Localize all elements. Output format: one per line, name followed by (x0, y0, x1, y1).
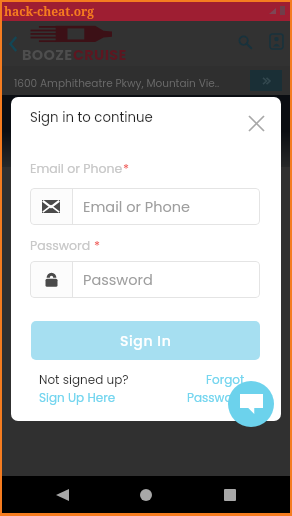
staticText: BOOZE (22, 45, 73, 65)
button[interactable]: Back (0, 21, 26, 66)
button[interactable]: Recents (208, 476, 252, 513)
staticText: Sign Up Here (39, 389, 116, 406)
staticText: Forgot (206, 371, 245, 388)
button[interactable]: Search (230, 19, 260, 64)
staticText: Password (30, 237, 94, 254)
staticText: CRUISE (73, 45, 127, 65)
staticText: Email or Phone (30, 160, 123, 177)
staticText: hack-cheat.org (4, 3, 95, 19)
staticText: Sign In (120, 331, 172, 351)
button[interactable]: Home (124, 476, 168, 513)
staticText: Password (83, 270, 153, 290)
staticText: Sign in to continue (30, 108, 153, 127)
staticText: Email or Phone (83, 197, 190, 217)
button[interactable]: Sign In (31, 321, 260, 360)
button[interactable]: Password (30, 261, 260, 298)
staticText: Not signed up? (39, 371, 129, 388)
staticText: * (94, 237, 101, 254)
button[interactable]: Forgot (165, 371, 245, 406)
staticText: Password (187, 389, 245, 406)
button[interactable]: Back (40, 476, 84, 513)
button[interactable]: Chat (228, 381, 274, 427)
button[interactable]: Email or Phone (30, 188, 260, 225)
button[interactable]: Account (260, 19, 292, 64)
staticText: 1600 Amphitheatre Pkwy, Mountain Vie.. (14, 76, 220, 91)
button[interactable]: Go (250, 70, 282, 91)
button[interactable]: Close (243, 110, 269, 136)
button[interactable]: Not signed up? (39, 371, 129, 406)
staticText: * (123, 160, 130, 177)
